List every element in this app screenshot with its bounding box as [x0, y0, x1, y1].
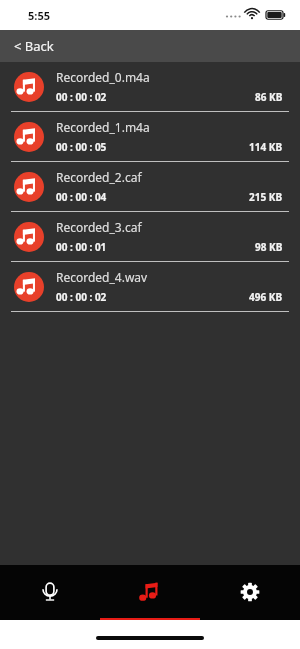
staticText: 496 KB [249, 290, 283, 304]
staticText: 00 : 00 : 02 [56, 290, 107, 304]
staticText: Recorded_3.caf [56, 219, 142, 235]
button[interactable]: < Back [0, 30, 300, 62]
staticText: 86 KB [255, 90, 283, 104]
button[interactable]: Recorded_1.m4a [0, 112, 300, 162]
button[interactable]: Settings [200, 565, 300, 618]
staticText: 00 : 00 : 02 [56, 90, 107, 104]
button[interactable]: Record [0, 565, 100, 618]
button[interactable]: Recorded_4.wav [0, 262, 300, 312]
button[interactable]: Recordings [100, 565, 200, 618]
staticText: Recorded_0.m4a [56, 69, 150, 85]
staticText: 00 : 00 : 05 [56, 140, 107, 154]
staticText: Recorded_1.m4a [56, 119, 150, 135]
staticText: 00 : 00 : 01 [56, 240, 107, 254]
staticText: Recorded_4.wav [56, 269, 148, 285]
staticText: < Back [14, 37, 54, 55]
button[interactable]: Recorded_3.caf [0, 212, 300, 262]
staticText: 98 KB [255, 240, 283, 254]
staticText: 215 KB [249, 190, 283, 204]
staticText: Recorded_2.caf [56, 169, 142, 185]
button[interactable]: Recorded_2.caf [0, 162, 300, 212]
staticText: 114 KB [249, 140, 283, 154]
staticText: 00 : 00 : 04 [56, 190, 107, 204]
button[interactable]: Recorded_0.m4a [0, 62, 300, 112]
staticText: 5:55 [28, 8, 50, 23]
